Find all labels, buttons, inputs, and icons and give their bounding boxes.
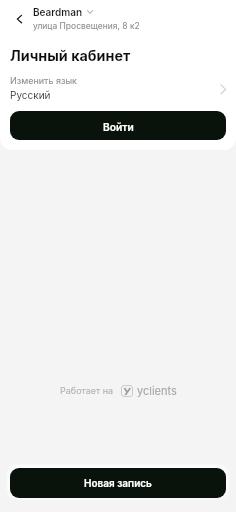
button[interactable]: Изменить язык [0,71,236,104]
staticText: Войти [103,121,134,133]
staticText: Новая запись [84,477,152,489]
button[interactable]: Back [5,5,33,33]
staticText: Beardman [33,6,83,18]
button[interactable]: Новая запись [10,468,226,498]
staticText: Личный кабинет [10,47,131,64]
staticText: Работает на [60,385,114,396]
button[interactable]: Beardman [33,6,95,18]
button[interactable]: Войти [10,111,226,140]
staticText: Изменить язык [10,75,77,86]
staticText: Русский [10,89,51,101]
staticText: улица Просвещения, 8 к2 [33,21,140,31]
staticText: yclients [137,384,177,397]
